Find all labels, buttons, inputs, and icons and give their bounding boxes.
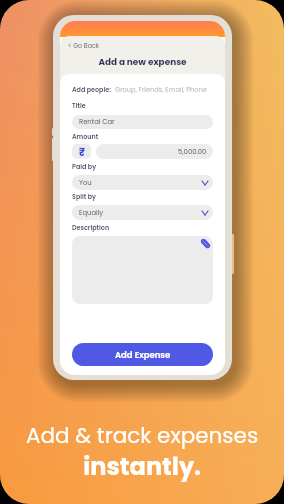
staticText: Description [72, 223, 110, 232]
staticText: Paid by [72, 162, 97, 171]
button[interactable]: 5,000.00 [96, 144, 213, 159]
button[interactable]: Equally [72, 205, 213, 220]
staticText: ₹ [79, 145, 85, 159]
button[interactable]: < Go Back [68, 41, 99, 50]
staticText: Add & track expenses [0, 420, 284, 450]
staticText: Split by [72, 192, 96, 201]
staticText: < Go Back [68, 41, 99, 50]
staticText: Title [72, 101, 86, 110]
staticText: Rental Car [79, 117, 115, 127]
button[interactable]: You [72, 175, 213, 190]
staticText: instantly. [0, 450, 284, 484]
button[interactable]: Attach file [201, 239, 210, 248]
staticText: Add Expense [115, 349, 171, 361]
button[interactable]: Add Expense [72, 343, 213, 366]
button[interactable]: Rental Car [72, 115, 213, 129]
staticText: Amount [72, 132, 99, 141]
staticText: You [79, 178, 92, 188]
button[interactable]: Currency [72, 144, 91, 159]
staticText: Add people: [72, 85, 111, 94]
button[interactable]: Attach file [72, 236, 213, 304]
staticText: Equally [79, 208, 104, 218]
staticText: Add a new expense [60, 56, 225, 68]
staticText: Group, Friends, Email, Phone [115, 85, 207, 94]
staticText: 5,000.00 [178, 147, 207, 157]
